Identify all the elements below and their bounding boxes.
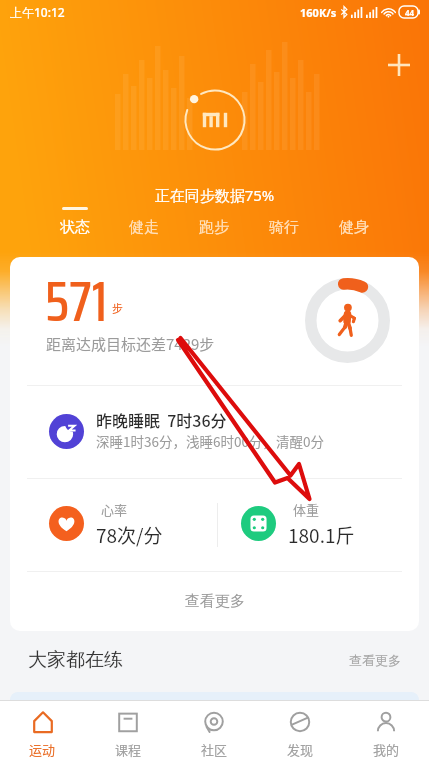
button[interactable] bbox=[10, 479, 209, 571]
staticText: 跑步 bbox=[199, 218, 229, 237]
staticText: 上午10:12 bbox=[10, 4, 65, 20]
staticText: 体重 bbox=[293, 500, 320, 519]
staticText: 查看更多 bbox=[185, 592, 245, 611]
button[interactable] bbox=[219, 479, 419, 571]
staticText: 160K/s bbox=[300, 5, 337, 20]
button[interactable]: 571 bbox=[10, 257, 419, 385]
staticText: 查看更多 bbox=[349, 652, 401, 668]
button[interactable]: 社区 bbox=[171, 701, 257, 761]
staticText: 状态 bbox=[60, 218, 90, 237]
button[interactable]: 课程 bbox=[85, 701, 171, 761]
button[interactable]: 健身 bbox=[319, 207, 389, 237]
staticText: 距离达成目标还差7429步 bbox=[46, 333, 215, 355]
staticText: 180.1斤 bbox=[288, 521, 355, 549]
button[interactable]: 我的 bbox=[343, 701, 429, 761]
staticText: 大家都在练 bbox=[28, 648, 123, 672]
staticText: 课程 bbox=[115, 740, 142, 759]
staticText: 深睡1时36分，浅睡6时00分，清醒0分 bbox=[96, 431, 324, 451]
staticText: 心率 bbox=[101, 500, 128, 519]
staticText: 昨晚睡眠 7时36分 bbox=[96, 408, 227, 431]
button[interactable]: 健走 bbox=[109, 207, 179, 237]
staticText: 44 bbox=[405, 7, 415, 18]
staticText: 我的 bbox=[373, 740, 400, 759]
button[interactable]: 发现 bbox=[257, 701, 343, 761]
button[interactable]: Add device bbox=[377, 43, 421, 87]
staticText: 社区 bbox=[201, 740, 228, 759]
staticText: 78次/分 bbox=[96, 521, 163, 549]
button[interactable]: 昨晚睡眠 7时36分 bbox=[10, 386, 419, 478]
staticText: 正在同步数据75% bbox=[0, 185, 429, 205]
button[interactable]: 运动 bbox=[0, 701, 85, 761]
staticText: 步 bbox=[112, 300, 123, 316]
staticText: 运动 bbox=[29, 740, 56, 759]
staticText: 健走 bbox=[129, 218, 159, 237]
button[interactable]: 骑行 bbox=[249, 207, 319, 237]
button[interactable]: 大家都在练 bbox=[28, 639, 401, 681]
button[interactable]: 跑步 bbox=[179, 207, 249, 237]
staticText: 571 bbox=[45, 259, 108, 346]
staticText: 健身 bbox=[339, 218, 369, 237]
button[interactable]: 查看更多 bbox=[10, 572, 419, 631]
staticText: 发现 bbox=[287, 740, 314, 759]
staticText: 骑行 bbox=[269, 218, 299, 237]
button[interactable]: 状态 bbox=[40, 207, 109, 237]
